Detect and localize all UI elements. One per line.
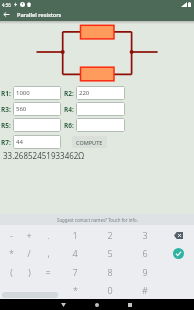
button[interactable]: 9 <box>136 263 154 281</box>
staticText: ) <box>28 266 31 278</box>
staticText: 0 <box>107 284 113 296</box>
button[interactable] <box>76 102 125 116</box>
button[interactable]: 44 <box>13 135 61 149</box>
staticText: 1 <box>72 229 78 241</box>
staticText: . <box>47 229 50 241</box>
staticText: 5 <box>107 247 113 259</box>
button[interactable]: ) <box>20 263 38 281</box>
button[interactable]: 2 <box>101 226 119 244</box>
staticText: - <box>10 229 13 241</box>
staticText: 220 <box>79 89 90 97</box>
staticText: 44 <box>16 138 23 146</box>
button[interactable]: 1000 <box>13 86 61 100</box>
staticText: , <box>47 247 50 259</box>
staticText: R1: <box>1 89 11 98</box>
button[interactable]: Done <box>161 244 194 262</box>
button[interactable]: Recent apps <box>116 299 144 310</box>
button[interactable]: * <box>66 281 84 299</box>
button[interactable]: Space <box>0 281 62 299</box>
staticText: R3: <box>1 105 11 114</box>
staticText: = <box>45 266 51 278</box>
button[interactable]: 0 <box>101 281 119 299</box>
staticText: 9 <box>142 266 148 278</box>
button[interactable]: Back <box>49 299 77 310</box>
staticText: * <box>9 247 14 259</box>
button[interactable]: 8 <box>101 263 119 281</box>
button[interactable]: Navigate up <box>0 8 13 21</box>
staticText: 2 <box>107 229 113 241</box>
button[interactable]: 6 <box>136 244 154 262</box>
staticText: / <box>27 247 31 259</box>
staticText: COMPUTE <box>76 139 103 146</box>
button[interactable]: - <box>2 226 20 244</box>
staticText: 560 <box>16 105 27 113</box>
button[interactable]: 1 <box>66 226 84 244</box>
button[interactable]: , <box>39 244 57 262</box>
staticText: Parallel resistors <box>17 11 62 19</box>
staticText: R5: <box>1 121 11 130</box>
button[interactable]: Delete <box>161 226 194 244</box>
button[interactable]: 7 <box>66 263 84 281</box>
button[interactable]: 5 <box>101 244 119 262</box>
button[interactable]: 560 <box>13 102 61 116</box>
staticText: 4 <box>72 247 78 259</box>
button[interactable]: 3 <box>136 226 154 244</box>
staticText: R4: <box>64 105 74 114</box>
staticText: + <box>26 229 32 241</box>
button[interactable]: Home <box>83 299 111 310</box>
staticText: R2: <box>64 89 74 98</box>
button[interactable]: 220 <box>76 86 125 100</box>
staticText: 1000 <box>16 89 30 97</box>
staticText: 4:56 <box>2 2 11 8</box>
button[interactable] <box>13 118 61 132</box>
button[interactable]: = <box>39 263 57 281</box>
staticText: Suggest contact names? Touch for info. <box>57 217 138 223</box>
button[interactable]: COMPUTE <box>72 136 107 148</box>
staticText: 8 <box>107 266 113 278</box>
button[interactable]: + <box>20 226 38 244</box>
button[interactable]: ( <box>2 263 20 281</box>
button[interactable]: . <box>39 226 57 244</box>
button[interactable]: * <box>2 244 20 262</box>
button[interactable]: 4 <box>66 244 84 262</box>
staticText: R7: <box>1 138 11 147</box>
staticText: * <box>73 284 78 296</box>
staticText: 3 <box>142 229 148 241</box>
button[interactable]: / <box>20 244 38 262</box>
button[interactable]: Suggest contact names? Touch for info. <box>0 214 194 225</box>
staticText: ( <box>10 266 13 278</box>
button[interactable]: # <box>136 281 154 299</box>
staticText: 33.26852451933462Ω <box>3 150 85 161</box>
button[interactable] <box>76 118 125 132</box>
staticText: 6 <box>142 247 148 259</box>
staticText: 7 <box>72 266 78 278</box>
staticText: # <box>142 284 148 296</box>
staticText: R6: <box>64 121 74 130</box>
